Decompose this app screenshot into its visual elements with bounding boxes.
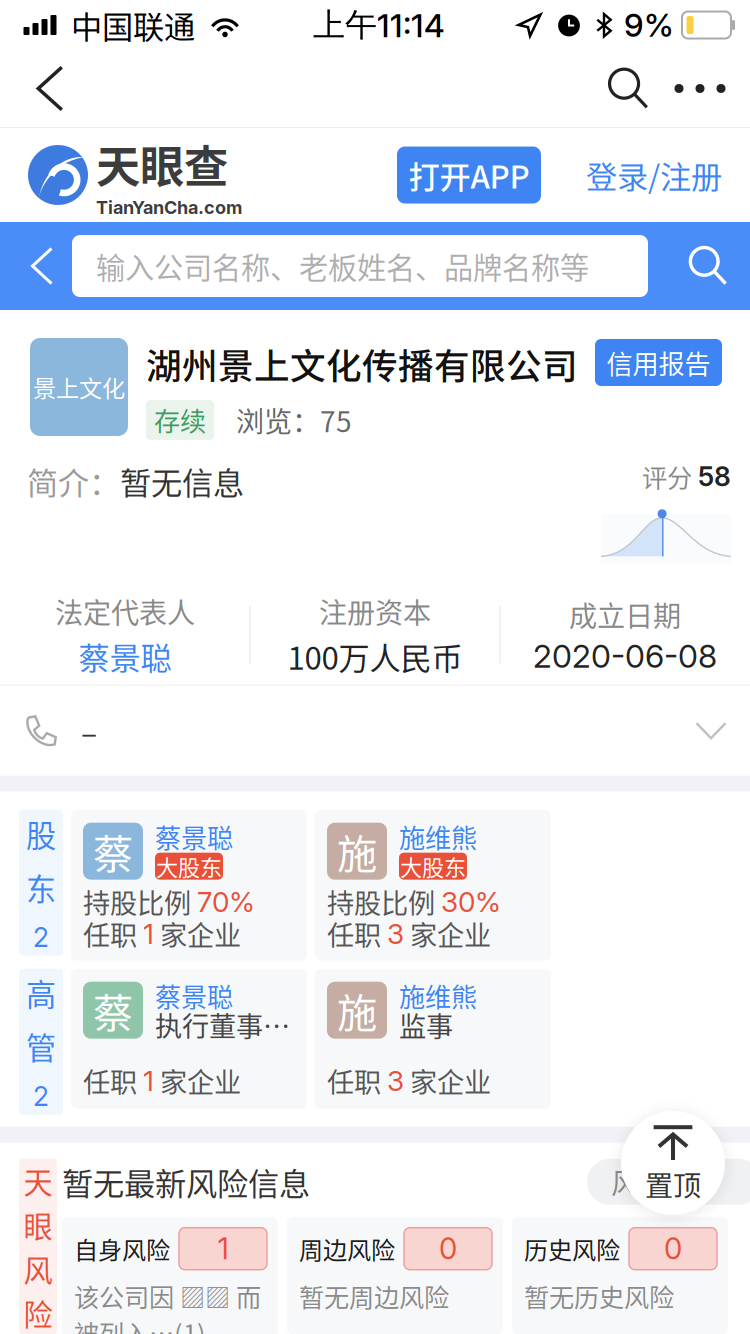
staticText: 0 [664,1231,682,1266]
staticText: 浏览：75 [236,399,352,440]
staticText: 风 [23,1247,52,1290]
staticText: 2 [33,921,49,953]
staticText: 打开APP [408,152,529,198]
button[interactable]: More [664,50,736,126]
button[interactable]: 信用报告 [595,339,722,386]
staticText: 法定代表人 [55,591,195,631]
staticText: 湖州景上文化传播有限公司 [146,338,578,389]
staticText: 蔡景聪 [155,818,233,856]
staticText: 暂无最新风险信息 [62,1159,310,1204]
staticText: 2020-06-08 [533,637,717,675]
staticText: 1 [143,917,154,951]
staticText: 大股东 [156,850,222,882]
staticText: 管 [26,1025,56,1068]
staticText: 股 [26,812,56,855]
staticText: 蔡景聪 [78,633,171,679]
staticText: 1 [217,1231,228,1266]
staticText: 登录/注册 [586,152,722,198]
staticText: 上午11:14 [313,5,445,45]
button[interactable]: 登录/注册 [541,146,722,203]
button[interactable]: Search [676,233,740,299]
staticText: 任职 [327,914,387,953]
button[interactable]: Back [14,50,86,126]
staticText: 险 [23,1291,52,1334]
staticText: 家企业 [154,1061,241,1100]
staticText: 东 [26,866,56,909]
staticText: 信用报告 [606,344,710,381]
staticText: 施 [337,822,377,880]
staticText: 2 [33,1080,49,1112]
staticText: 家企业 [404,914,491,953]
staticText: 成立日期 [569,594,681,635]
staticText: 施维熊 [399,818,477,856]
staticText: 施维熊 [399,977,477,1015]
staticText: 持股比例 [327,882,441,921]
staticText: 该公司因 ▨▨ 而被列入…(1) [74,1278,261,1334]
staticText: 家企业 [154,914,241,953]
staticText: 天眼查 [96,132,228,196]
staticText: 输入公司名称、老板姓名、品牌名称等 [96,245,589,287]
staticText: 蔡景聪 [155,977,233,1015]
staticText: 0 [439,1231,457,1266]
staticText: 30% [441,885,501,919]
button[interactable]: – [0,686,750,776]
staticText: 任职 [83,1061,143,1100]
staticText: 暂无周边风险 [299,1278,449,1314]
staticText: 存续 [154,401,206,439]
staticText: 注册资本 [319,591,431,631]
staticText: 中国联通 [71,2,195,48]
staticText: 3 [387,1064,404,1098]
staticText: 置顶 [645,1164,701,1204]
staticText: 简介： [27,458,120,503]
staticText: 施 [337,981,377,1039]
staticText: – [81,709,97,752]
staticText: 监事 [399,1005,453,1044]
staticText: 1 [143,1064,154,1098]
staticText: 评分 [642,458,698,495]
button[interactable]: 风险 [587,1159,750,1205]
staticText: 自身风险 [74,1231,170,1266]
staticText: 周边风险 [299,1231,395,1266]
staticText: 高 [26,971,56,1014]
staticText: 70% [197,885,255,919]
staticText: 任职 [83,914,143,953]
staticText: 眼 [23,1203,52,1246]
staticText: 任职 [327,1061,387,1100]
staticText: 蔡 [93,981,133,1039]
staticText: 历史风险 [524,1231,620,1266]
staticText: 风险 [611,1161,667,1202]
staticText: 3 [387,917,404,951]
staticText: 暂无信息 [120,458,244,503]
staticText: 9% [624,6,674,44]
staticText: 执行董事… [155,1005,290,1044]
staticText: 持股比例 [83,882,197,921]
staticText: 58 [698,460,731,493]
staticText: 100万人民币 [287,633,462,679]
staticText: 景上文化 [33,370,125,404]
button[interactable]: Search [592,50,664,126]
staticText: TianYanCha.com [96,197,242,218]
button[interactable]: Back [12,233,72,299]
staticText: 家企业 [404,1061,491,1100]
staticText: 暂无历史风险 [524,1278,674,1314]
button[interactable]: Scroll to top [621,1111,725,1215]
staticText: 蔡 [93,822,133,880]
button[interactable]: 打开APP [397,146,541,203]
staticText: 大股东 [400,850,466,882]
staticText: 天 [23,1159,52,1202]
